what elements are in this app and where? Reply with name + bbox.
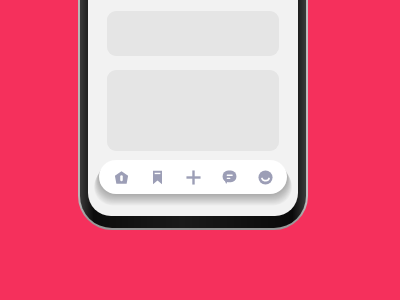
button[interactable]: Bookmarks [143, 163, 171, 191]
button[interactable]: Profile [251, 163, 279, 191]
button[interactable]: Add [179, 163, 207, 191]
button[interactable]: Messages [215, 163, 243, 191]
button[interactable]: Home [107, 163, 135, 191]
